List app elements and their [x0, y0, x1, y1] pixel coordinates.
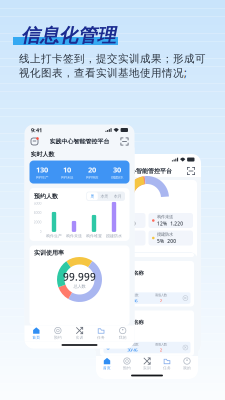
- staticText: 12%: [157, 220, 167, 227]
- button[interactable]: 实训: [137, 356, 157, 371]
- staticText: 36%: [109, 220, 119, 227]
- staticText: 2000: [33, 220, 41, 224]
- staticText: 99.999: [63, 270, 96, 284]
- staticText: 构件堆置: [86, 233, 102, 238]
- button[interactable]: 我的: [177, 356, 197, 371]
- staticText: 构件未送: [66, 233, 82, 238]
- staticText: 构件生产: [109, 214, 125, 219]
- button[interactable]: 预约: [47, 326, 69, 341]
- staticText: 本月: [114, 194, 122, 199]
- staticText: 预约: [123, 366, 131, 370]
- staticText: 实践中心智能管控平台: [112, 167, 172, 175]
- staticText: 30: [113, 164, 121, 175]
- staticText: 200: [167, 238, 176, 244]
- staticText: 6000: [33, 201, 41, 206]
- staticText: 任务: [97, 335, 105, 340]
- staticText: 构件生产: [36, 175, 48, 180]
- staticText: 30/46: [127, 347, 137, 353]
- staticText: 请假人数: [155, 293, 167, 297]
- staticText: 9:41: [31, 126, 42, 134]
- staticText: 我的: [183, 366, 191, 370]
- staticText: 构件未送: [157, 214, 173, 219]
- staticText: 搅建防水: [106, 233, 122, 238]
- staticText: 搅建防水: [111, 175, 123, 180]
- staticText: 5%: [157, 238, 164, 244]
- staticText: 总人数: [73, 284, 85, 289]
- staticText: 预约实训课程名称: [103, 319, 143, 326]
- staticText: 30/46: [127, 298, 137, 303]
- staticText: 搅建防水: [157, 232, 173, 237]
- staticText: 1,200: [123, 220, 136, 227]
- staticText: 实训: [143, 366, 151, 370]
- staticText: 构件未送: [61, 175, 73, 180]
- staticText: 预约实训课程名称: [103, 269, 143, 276]
- staticText: 预约: [54, 335, 62, 340]
- button[interactable]: Scan: [119, 136, 129, 146]
- staticText: 周: [90, 194, 94, 199]
- staticText: 任务: [163, 366, 171, 370]
- staticText: 4000: [33, 210, 41, 215]
- staticText: 8%: [109, 238, 116, 244]
- staticText: 10: [63, 164, 71, 175]
- staticText: 1,220: [170, 220, 183, 227]
- button[interactable]: 实训: [69, 326, 90, 341]
- staticText: 本周: [100, 194, 108, 199]
- button[interactable]: 任务: [90, 326, 112, 341]
- staticText: 9:41: [99, 156, 110, 163]
- staticText: 0: [39, 229, 41, 234]
- staticText: 构件堆置: [109, 232, 125, 237]
- button[interactable]: Messages: [29, 136, 39, 146]
- button[interactable]: 任务: [157, 356, 177, 371]
- button[interactable]: Scan: [186, 166, 196, 176]
- button[interactable]: 9:30: [100, 310, 194, 356]
- button[interactable]: 首页: [25, 326, 47, 341]
- staticText: 学生总数: [126, 293, 138, 297]
- staticText: 2: [160, 347, 162, 353]
- staticText: 首页: [103, 366, 111, 370]
- staticText: 预约人数: [34, 192, 58, 200]
- staticText: 线上打卡签到，提交实训成果；形成可 视化图表，查看实训基地使用情况;: [19, 52, 206, 80]
- button[interactable]: 预约: [117, 356, 137, 371]
- staticText: 构件生产: [103, 328, 119, 333]
- staticText: 我的: [119, 335, 127, 340]
- staticText: 2: [160, 298, 162, 303]
- staticText: 130: [36, 164, 48, 175]
- staticText: 学生总数: [126, 342, 138, 347]
- staticText: 1,008: [120, 238, 133, 244]
- staticText: 构件生产: [46, 233, 62, 238]
- staticText: 实训: [75, 335, 83, 340]
- staticText: 信息化管理: [21, 24, 116, 47]
- staticText: 实训使用率: [34, 249, 64, 256]
- button[interactable]: 首页: [97, 356, 117, 371]
- staticText: 请假人数: [155, 342, 167, 347]
- staticText: XXXXX班级: [103, 334, 121, 340]
- button[interactable]: 9:30: [100, 261, 194, 306]
- staticText: 首页: [32, 335, 40, 340]
- staticText: 20: [88, 164, 96, 175]
- staticText: 实时人数: [30, 150, 54, 158]
- button[interactable]: 我的: [112, 326, 133, 341]
- staticText: 实践中心智能管控平台: [49, 138, 109, 145]
- staticText: 构件堆置: [86, 175, 98, 180]
